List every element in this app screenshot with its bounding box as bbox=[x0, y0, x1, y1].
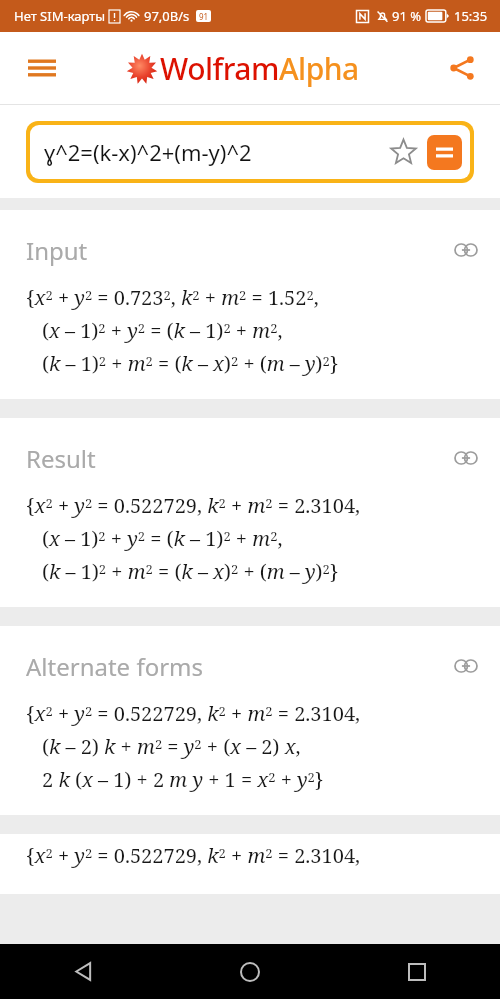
staticText: Result bbox=[26, 442, 96, 475]
button[interactable]: Home bbox=[166, 944, 333, 999]
staticText: (x – 1)2 + y2 = (k – 1)2 + m2, bbox=[42, 525, 283, 552]
staticText: 2 k (x – 1) + 2 m y + 1 = x2 + y2} bbox=[42, 766, 324, 793]
button[interactable]: Share bbox=[438, 44, 486, 92]
staticText: (k – 1)2 + m2 = (k – x)2 + (m – y)2} bbox=[42, 558, 339, 585]
staticText: WolframAlpha bbox=[160, 48, 359, 89]
staticText: (x – 1)2 + y2 = (k – 1)2 + m2, bbox=[42, 317, 283, 344]
button[interactable]: Menu bbox=[16, 42, 68, 94]
staticText: Input bbox=[26, 234, 88, 267]
button[interactable]: Copy link bbox=[448, 440, 484, 476]
button[interactable]: Copy link bbox=[448, 232, 484, 268]
staticText: 15:35 bbox=[454, 7, 488, 25]
staticText: {x2 + y2 = 0.522729, k2 + m2 = 2.3104, bbox=[26, 700, 361, 727]
staticText: Alternate forms bbox=[26, 650, 203, 683]
staticText: {x2 + y2 = 0.522729, k2 + m2 = 2.3104, bbox=[26, 842, 361, 869]
staticText: 97,0B/s bbox=[144, 7, 190, 25]
staticText: (k – 1)2 + m2 = (k – x)2 + (m – y)2} bbox=[42, 350, 339, 377]
staticText: 91 bbox=[199, 11, 209, 22]
button[interactable]: Alternate forms bbox=[0, 626, 500, 815]
staticText: Нет SIM-карты bbox=[14, 7, 106, 25]
button[interactable]: Input bbox=[0, 210, 500, 399]
staticText: 91 % bbox=[392, 7, 422, 25]
button[interactable]: Copy link bbox=[448, 648, 484, 684]
staticText: (k – 2) k + m2 = y2 + (x – 2) x, bbox=[42, 733, 301, 760]
button[interactable]: Result bbox=[0, 418, 500, 607]
button[interactable]: ɣ^2=(k-x)^2+(m-y)^2 bbox=[30, 125, 470, 179]
button[interactable]: Add to favorites bbox=[383, 132, 423, 172]
staticText: ɣ^2=(k-x)^2+(m-y)^2 bbox=[44, 137, 252, 167]
staticText: {x2 + y2 = 0.7232, k2 + m2 = 1.522, bbox=[26, 284, 319, 311]
staticText: {x2 + y2 = 0.522729, k2 + m2 = 2.3104, bbox=[26, 492, 361, 519]
button[interactable]: Back bbox=[0, 944, 166, 999]
button[interactable]: Recent apps bbox=[333, 944, 500, 999]
button[interactable]: Compute bbox=[427, 135, 462, 170]
